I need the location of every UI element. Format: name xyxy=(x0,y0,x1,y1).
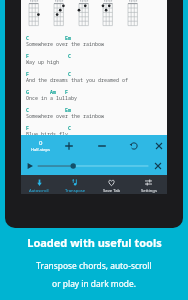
staticText: Transpose xyxy=(65,188,86,194)
button[interactable]: Close autoscroll xyxy=(151,159,165,173)
staticText: Transpose chords, auto-scroll xyxy=(36,260,152,271)
button[interactable] xyxy=(38,159,148,173)
staticText: G Am F xyxy=(26,89,69,96)
staticText: Blue birds fly xyxy=(26,131,69,138)
staticText: Autoscroll xyxy=(29,188,49,194)
button[interactable]: Subtract half step xyxy=(95,139,109,153)
staticText: 0 xyxy=(39,139,43,147)
staticText: Somewhere over the rainbow xyxy=(26,113,105,120)
staticText: Way up high xyxy=(26,59,60,66)
button[interactable]: Add half step xyxy=(62,139,76,153)
staticText: Loaded with useful tools xyxy=(27,235,162,250)
staticText: C Em xyxy=(26,107,72,114)
button[interactable]: Save Tab xyxy=(93,175,130,194)
staticText: F C xyxy=(26,71,72,78)
staticText: or play in dark mode. xyxy=(52,278,136,289)
button[interactable]: Settings xyxy=(130,175,167,194)
button[interactable]: Close transpose xyxy=(152,139,166,153)
staticText: F C xyxy=(26,53,72,60)
button[interactable]: Reset xyxy=(127,139,141,153)
staticText: C Em xyxy=(26,35,72,42)
staticText: Save Tab xyxy=(103,188,121,194)
button[interactable]: Play xyxy=(23,159,37,173)
staticText: Settings xyxy=(141,188,157,194)
staticText: And the dreams that you dreamed of xyxy=(26,77,129,84)
staticText: Once in a lullaby xyxy=(26,95,78,102)
button[interactable]: Autoscroll xyxy=(21,175,57,194)
button[interactable]: Transpose xyxy=(57,175,93,194)
staticText: Somewhere over the rainbow xyxy=(26,41,105,48)
staticText: F C xyxy=(26,125,72,132)
staticText: Half-steps xyxy=(31,147,50,152)
